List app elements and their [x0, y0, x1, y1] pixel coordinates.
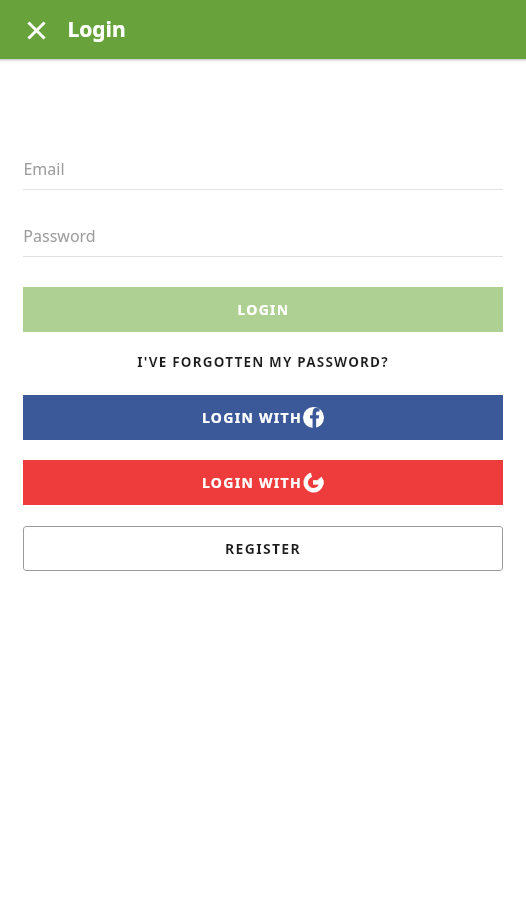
button[interactable]: LOGIN WITH: [23, 395, 503, 440]
button[interactable]: LOGIN WITH: [23, 460, 503, 505]
staticText: LOGIN WITH: [202, 408, 302, 427]
staticText: Email: [23, 158, 65, 180]
staticText: REGISTER: [225, 539, 301, 558]
button[interactable]: I'VE FORGOTTEN MY PASSWORD?: [0, 349, 526, 375]
staticText: Password: [23, 225, 96, 247]
button[interactable]: LOGIN: [23, 287, 503, 332]
staticText: LOGIN WITH: [202, 473, 302, 492]
button[interactable]: REGISTER: [23, 526, 503, 571]
button[interactable]: Email: [23, 148, 503, 190]
staticText: LOGIN: [237, 300, 290, 319]
staticText: Login: [67, 15, 126, 44]
button[interactable]: Close: [18, 12, 54, 48]
staticText: I'VE FORGOTTEN MY PASSWORD?: [137, 353, 389, 371]
button[interactable]: Password: [23, 215, 503, 257]
